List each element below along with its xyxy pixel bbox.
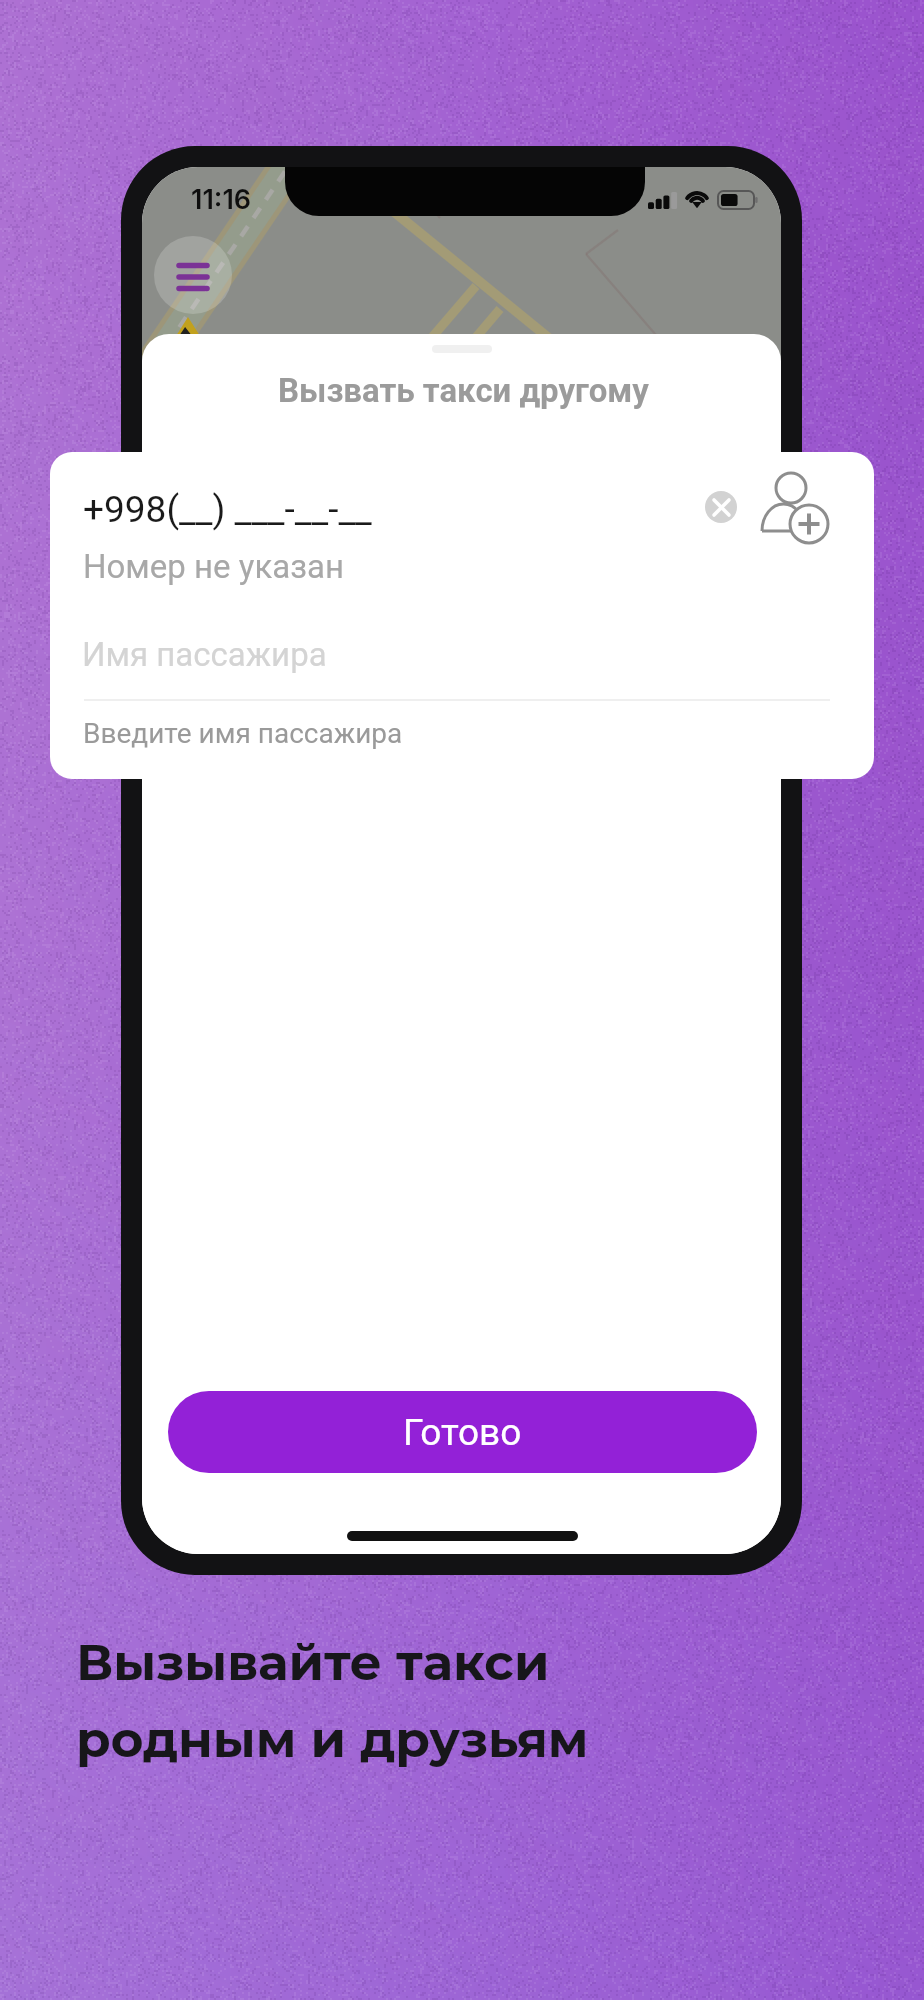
button[interactable]: Add contact [750,464,834,548]
staticText: 11:16 [191,183,252,216]
staticText: Готово [403,1411,522,1454]
button[interactable]: Готово [168,1391,757,1473]
staticText: Имя пассажира [82,635,327,674]
button[interactable]: Menu [154,236,232,314]
staticText: Вызвать такси другому [278,371,649,410]
button[interactable]: Clear [705,491,737,523]
staticText: родным и друзьям [76,1709,589,1770]
staticText: +998(__) ___-__-__ [83,488,372,531]
staticText: Номер не указан [83,547,344,586]
staticText: Вызывайте такси [76,1632,550,1693]
staticText: Введите имя пассажира [83,717,403,750]
